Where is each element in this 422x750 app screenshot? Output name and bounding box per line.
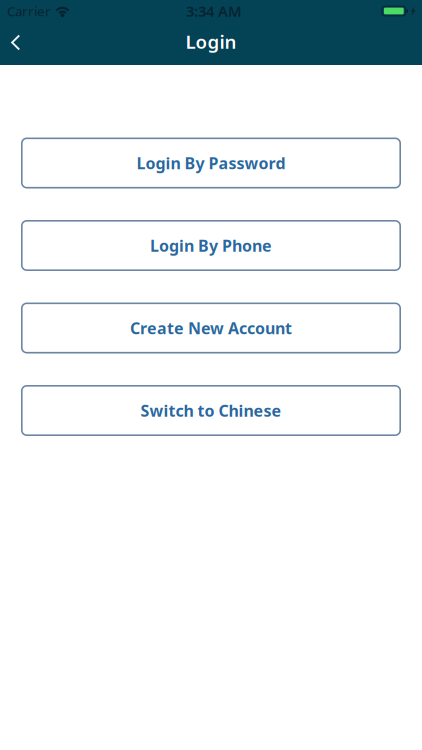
button[interactable]: Create New Account: [21, 302, 401, 353]
button[interactable]: Login By Phone: [21, 220, 401, 271]
staticText: 3:34 AM: [186, 1, 242, 21]
staticText: Create New Account: [130, 317, 292, 339]
staticText: Login By Phone: [150, 235, 272, 256]
button[interactable]: Switch to Chinese: [21, 385, 401, 436]
staticText: Carrier: [7, 2, 51, 20]
staticText: Switch to Chinese: [140, 400, 281, 421]
staticText: Login: [185, 29, 236, 54]
button[interactable]: Login By Password: [21, 137, 401, 188]
staticText: Login By Password: [136, 152, 285, 174]
button[interactable]: Back: [0, 22, 30, 65]
